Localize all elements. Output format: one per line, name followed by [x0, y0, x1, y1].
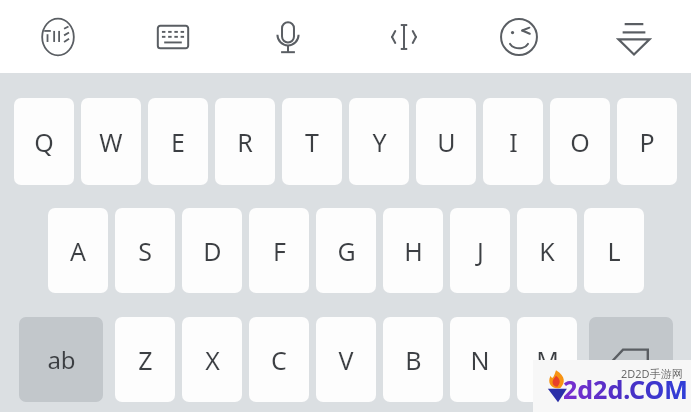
- staticText: U: [437, 125, 456, 159]
- button[interactable]: E: [148, 98, 208, 185]
- button[interactable]: O: [550, 98, 610, 185]
- button[interactable]: M: [517, 317, 577, 402]
- button[interactable]: A: [48, 208, 108, 293]
- staticText: ab: [47, 343, 76, 376]
- staticText: Q: [34, 125, 54, 159]
- staticText: 2d2d.COM: [563, 372, 688, 406]
- button[interactable]: X: [182, 317, 242, 402]
- button[interactable]: Hide keyboard: [576, 0, 691, 73]
- button[interactable]: V: [316, 317, 376, 402]
- button[interactable]: R: [215, 98, 275, 185]
- button[interactable]: C: [249, 317, 309, 402]
- staticText: X: [205, 343, 220, 377]
- staticText: A: [70, 234, 86, 268]
- button[interactable]: Z: [115, 317, 175, 402]
- staticText: O: [570, 125, 590, 159]
- button[interactable]: Move cursor: [346, 0, 461, 73]
- button[interactable]: H: [383, 208, 443, 293]
- button[interactable]: J: [450, 208, 510, 293]
- button[interactable]: K: [517, 208, 577, 293]
- staticText: 2D2D手游网: [621, 366, 683, 381]
- staticText: V: [338, 343, 354, 377]
- button[interactable]: F: [249, 208, 309, 293]
- button[interactable]: Backspace: [589, 317, 673, 402]
- button[interactable]: S: [115, 208, 175, 293]
- staticText: W: [99, 125, 123, 159]
- button[interactable]: Emoji: [461, 0, 576, 73]
- staticText: D: [203, 234, 222, 268]
- staticText: Y: [372, 125, 387, 159]
- staticText: B: [405, 343, 422, 377]
- button[interactable]: Keyboard: [115, 0, 230, 73]
- staticText: I: [509, 125, 518, 159]
- button[interactable]: U: [416, 98, 476, 185]
- button[interactable]: P: [617, 98, 677, 185]
- button[interactable]: G: [316, 208, 376, 293]
- staticText: J: [477, 234, 484, 268]
- button[interactable]: L: [584, 208, 644, 293]
- button[interactable]: Voice input: [230, 0, 345, 73]
- button[interactable]: N: [450, 317, 510, 402]
- staticText: R: [237, 125, 253, 159]
- staticText: G: [337, 234, 356, 268]
- staticText: C: [271, 343, 287, 377]
- staticText: H: [404, 234, 423, 268]
- button[interactable]: I: [483, 98, 543, 185]
- button[interactable]: D: [182, 208, 242, 293]
- staticText: K: [539, 234, 555, 268]
- button[interactable]: W: [81, 98, 141, 185]
- button[interactable]: T: [282, 98, 342, 185]
- button[interactable]: B: [383, 317, 443, 402]
- staticText: Z: [138, 343, 153, 377]
- button[interactable]: Q: [14, 98, 74, 185]
- staticText: L: [607, 234, 621, 268]
- staticText: E: [171, 125, 185, 159]
- button[interactable]: Y: [349, 98, 409, 185]
- button[interactable]: Input method: [0, 0, 115, 73]
- staticText: N: [470, 343, 490, 377]
- staticText: P: [639, 125, 655, 159]
- staticText: T: [305, 125, 319, 159]
- button[interactable]: ab: [19, 317, 103, 402]
- staticText: M: [536, 343, 559, 377]
- staticText: F: [273, 234, 286, 268]
- staticText: S: [138, 234, 152, 268]
